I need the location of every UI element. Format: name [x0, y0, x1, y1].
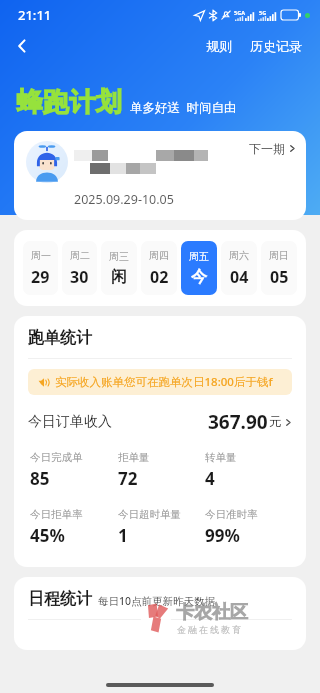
staticText: 今日订单收入: [28, 413, 112, 431]
staticText: 今: [191, 267, 207, 287]
button[interactable]: 2025.09.29-10.05: [14, 131, 306, 220]
staticText: 5G: [259, 9, 267, 16]
staticText: 拒单量: [118, 451, 150, 464]
button[interactable]: Back: [6, 30, 38, 62]
staticText: 日程统计: [28, 589, 92, 609]
staticText: 今日拒单率: [30, 508, 83, 521]
staticText: 周六: [229, 249, 249, 262]
staticText: 每日10点前更新昨天数据: [98, 594, 216, 608]
staticText: 29: [31, 266, 50, 288]
button[interactable]: 周五: [181, 241, 217, 295]
button[interactable]: 今日订单收入: [28, 409, 292, 435]
staticText: 5GA: [234, 9, 245, 16]
button[interactable]: 实际收入账单您可在跑单次日18:00后于钱f: [28, 369, 292, 395]
button[interactable]: 周一: [23, 241, 58, 295]
staticText: 04: [230, 266, 249, 288]
button[interactable]: 下一期: [249, 141, 296, 156]
staticText: 周五: [189, 250, 209, 263]
staticText: 367.90: [208, 409, 268, 435]
staticText: 历史记录: [250, 38, 302, 54]
staticText: 周三: [109, 250, 129, 263]
staticText: 今日完成单: [30, 451, 83, 464]
staticText: 闲: [111, 267, 127, 287]
staticText: 05: [270, 266, 289, 288]
staticText: 周日: [269, 249, 289, 262]
staticText: 金融在线教育: [176, 624, 242, 635]
staticText: 蜂跑计划: [16, 86, 122, 119]
staticText: 21:11: [18, 6, 52, 24]
staticText: 实际收入账单您可在跑单次日18:00后于钱f: [55, 374, 273, 390]
staticText: 85: [30, 467, 50, 490]
button[interactable]: 周三: [101, 241, 137, 295]
button[interactable]: 周二: [62, 241, 97, 295]
staticText: 规则: [206, 38, 232, 54]
button[interactable]: 规则: [202, 34, 236, 58]
staticText: 周一: [31, 249, 51, 262]
staticText: 卡农社区: [176, 601, 248, 624]
staticText: 1: [118, 524, 128, 547]
staticText: 单多好送 时间自由: [130, 99, 237, 116]
staticText: 30: [70, 266, 89, 288]
button[interactable]: 历史记录: [246, 34, 306, 58]
staticText: 今日准时率: [205, 508, 258, 521]
staticText: 45%: [30, 524, 65, 547]
staticText: 周二: [70, 249, 90, 262]
staticText: 4: [205, 467, 215, 490]
button[interactable]: 周四: [141, 241, 177, 295]
staticText: 转单量: [205, 451, 237, 464]
staticText: 跑单统计: [28, 328, 92, 348]
button[interactable]: 周日: [261, 241, 297, 295]
button[interactable]: 周六: [221, 241, 257, 295]
staticText: 72: [118, 467, 138, 490]
staticText: 02: [150, 266, 169, 288]
staticText: 今日超时单量: [118, 508, 181, 521]
staticText: 2025.09.29-10.05: [74, 191, 174, 208]
staticText: 周四: [149, 249, 169, 262]
staticText: 99%: [205, 524, 240, 547]
staticText: 元: [269, 414, 282, 430]
staticText: 下一期: [249, 141, 285, 156]
